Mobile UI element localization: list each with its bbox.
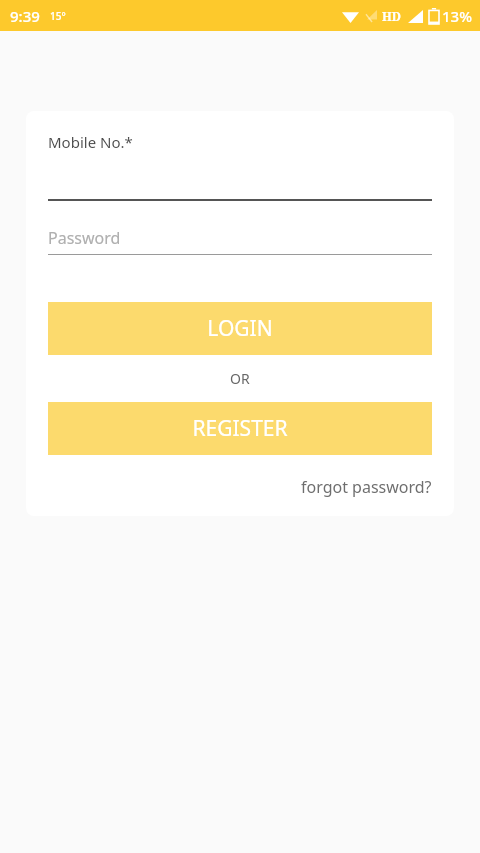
- button[interactable]: REGISTER: [48, 402, 432, 455]
- staticText: forgot password?: [301, 476, 432, 498]
- button[interactable]: forgot password?: [301, 476, 432, 498]
- staticText: Mobile No.*: [48, 132, 133, 152]
- staticText: 9:39: [10, 6, 40, 26]
- staticText: OR: [230, 369, 250, 388]
- staticText: REGISTER: [192, 414, 288, 443]
- staticText: Password: [48, 227, 121, 249]
- staticText: LOGIN: [207, 314, 273, 343]
- staticText: 13%: [442, 6, 472, 26]
- staticText: 15°: [50, 9, 66, 23]
- staticText: HD: [382, 8, 402, 24]
- button[interactable]: Password: [48, 227, 432, 255]
- button[interactable]: LOGIN: [48, 302, 432, 355]
- button[interactable]: Mobile No.*: [48, 132, 432, 201]
